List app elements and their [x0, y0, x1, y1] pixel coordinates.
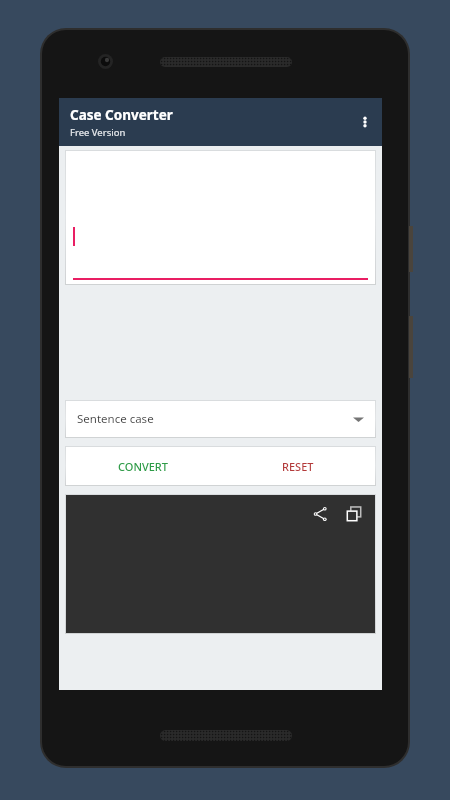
- staticText: Free Version: [70, 126, 126, 139]
- button[interactable]: Share: [307, 501, 333, 527]
- staticText: Sentence case: [77, 411, 154, 427]
- staticText: CONVERT: [118, 459, 168, 474]
- button[interactable]: [66, 151, 375, 284]
- button[interactable]: Sentence case: [66, 401, 375, 437]
- staticText: Case Converter: [70, 106, 173, 124]
- button[interactable]: CONVERT: [66, 447, 220, 485]
- button[interactable]: Copy: [341, 501, 367, 527]
- staticText: RESET: [282, 459, 314, 474]
- button[interactable]: More options: [348, 98, 382, 146]
- button[interactable]: RESET: [220, 447, 375, 485]
